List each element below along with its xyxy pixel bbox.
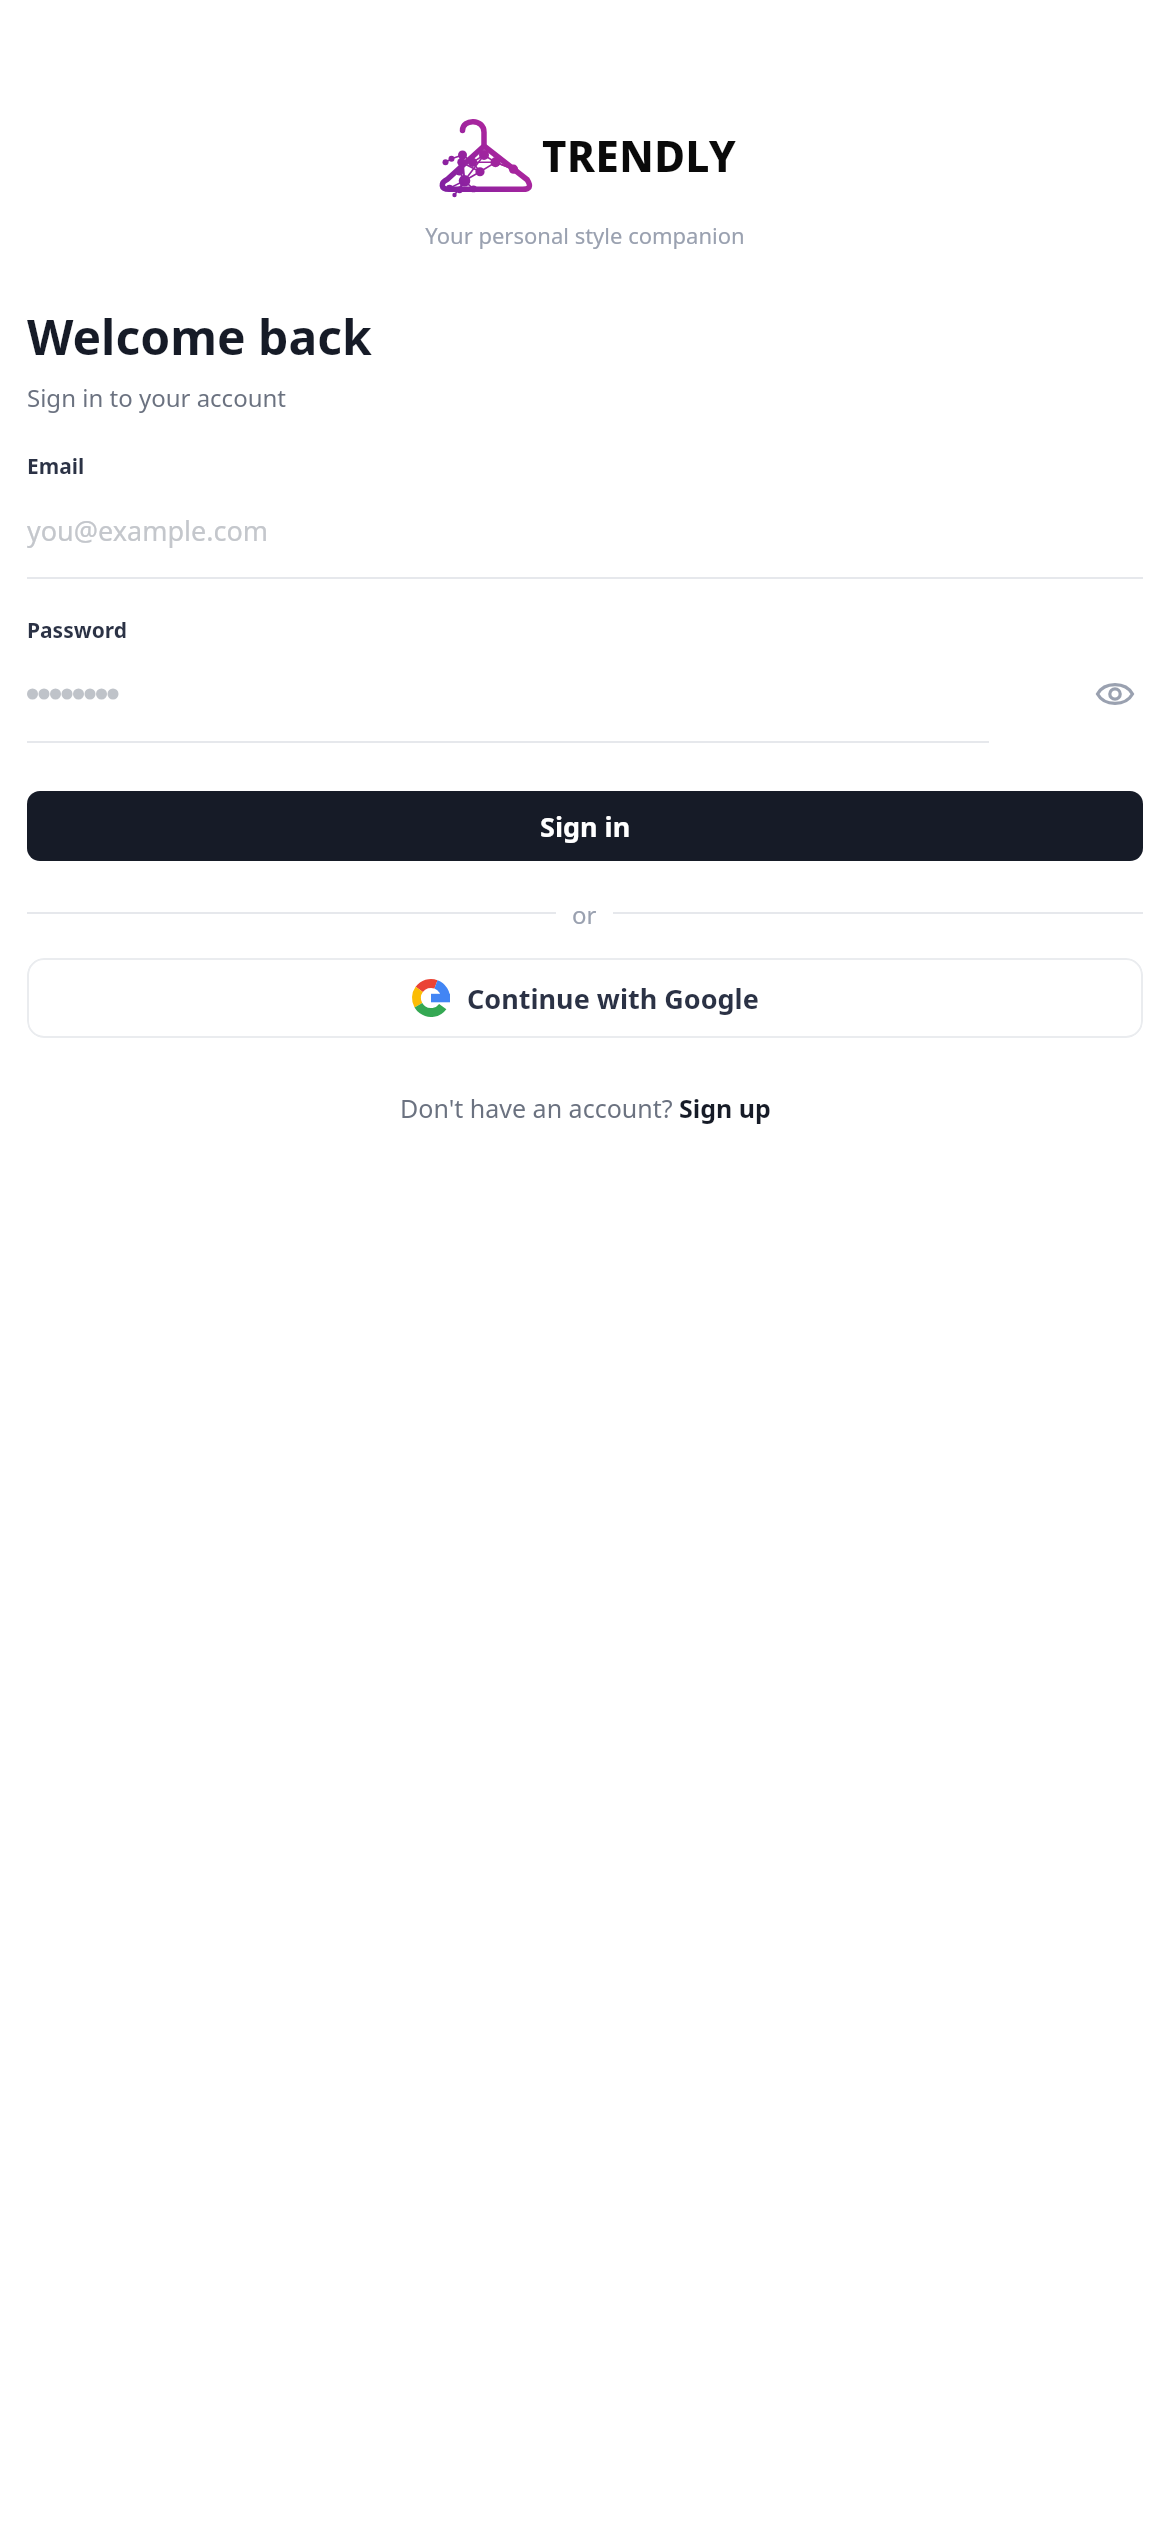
staticText: Your personal style companion — [0, 220, 1170, 250]
staticText: or — [572, 898, 597, 928]
staticText: Don't have an account? Sign up — [400, 1091, 771, 1125]
staticText: Sign in — [540, 808, 631, 845]
staticText: Continue with Google — [467, 980, 759, 1017]
button[interactable]: Show password — [1087, 666, 1143, 722]
staticText: you@example.com — [27, 512, 269, 549]
staticText: TRENDLY — [542, 127, 737, 184]
button[interactable]: you@example.com — [27, 501, 1143, 559]
staticText: Sign in to your account — [27, 381, 286, 414]
button[interactable]: Don't have an account? Sign up — [27, 1082, 1143, 1134]
staticText: Password — [27, 616, 128, 645]
button[interactable]: Sign in — [27, 791, 1143, 861]
button[interactable] — [27, 665, 1087, 723]
button[interactable]: Continue with Google — [27, 958, 1143, 1038]
staticText: Welcome back — [27, 304, 372, 369]
staticText: Email — [27, 452, 85, 481]
